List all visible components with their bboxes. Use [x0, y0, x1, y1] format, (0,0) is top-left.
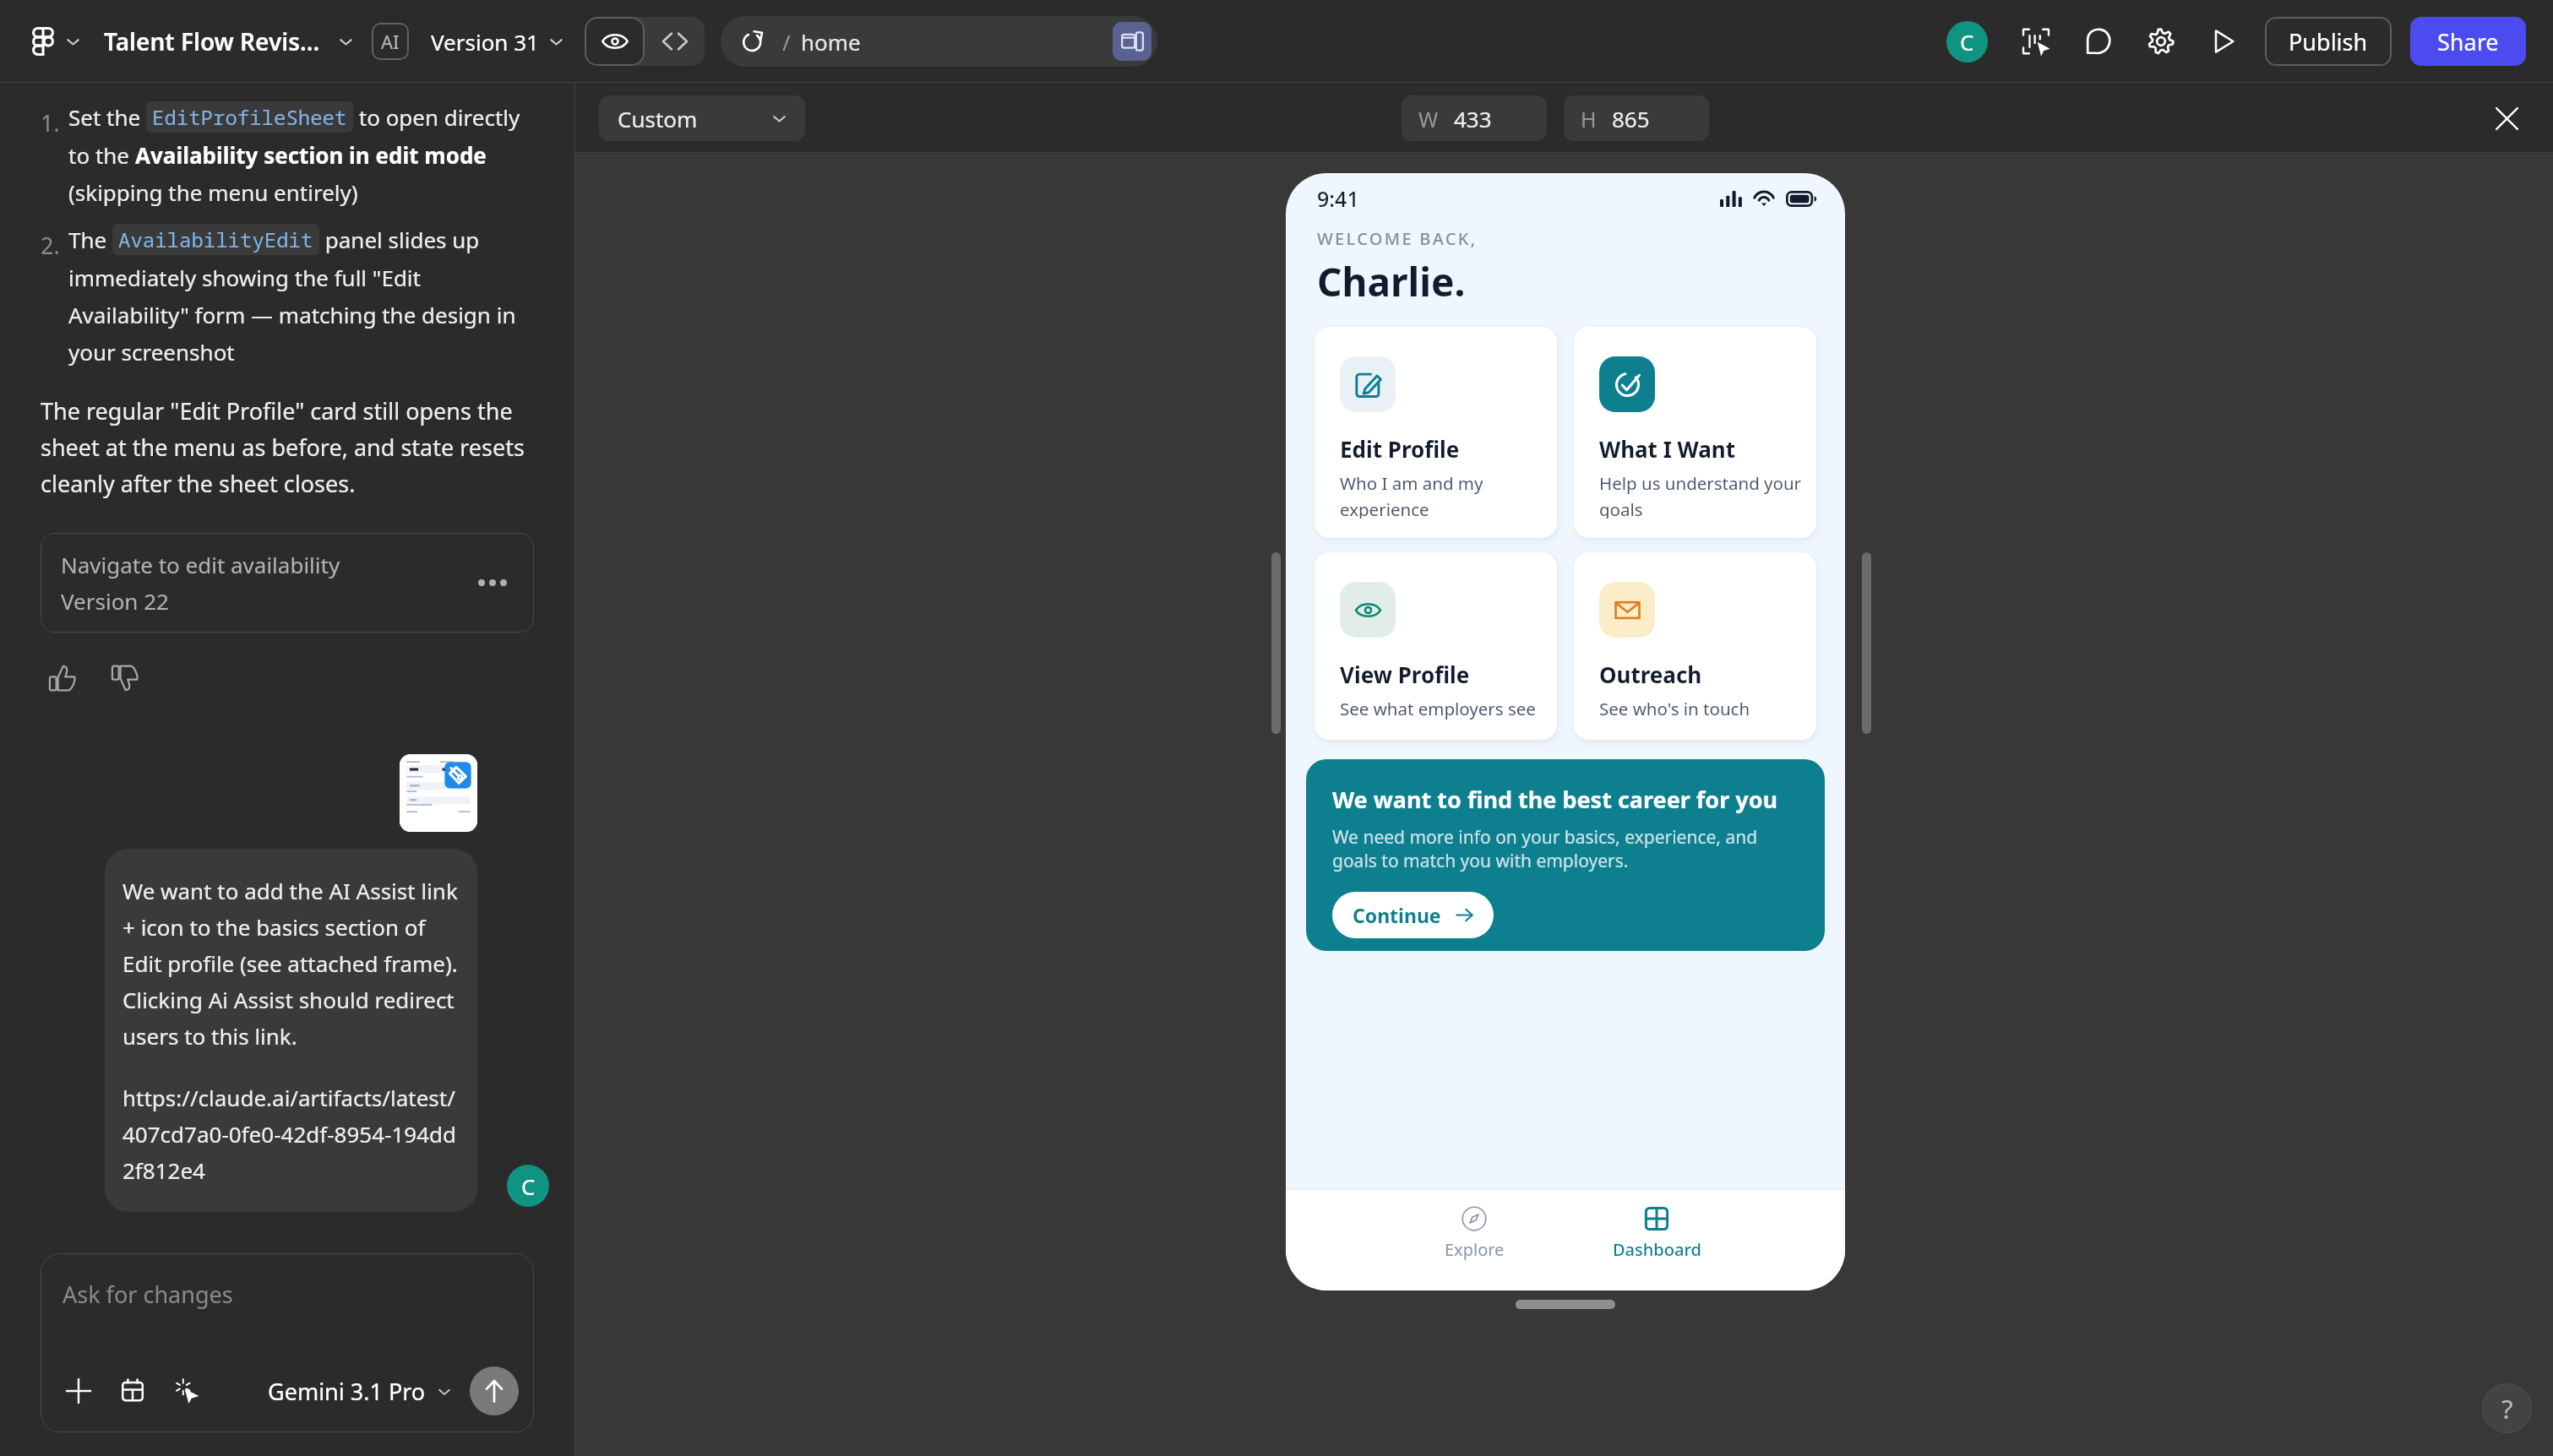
button[interactable]: Like [41, 656, 84, 700]
staticText: 2. [41, 230, 68, 261]
staticText: Who I am and my experience [1340, 471, 1545, 519]
staticText: 1. [41, 107, 68, 139]
staticText: W [1418, 105, 1439, 133]
button[interactable]: More options [471, 562, 514, 604]
button[interactable]: / [721, 16, 1157, 67]
staticText: 865 [1612, 104, 1650, 133]
staticText: AvailabilityEdit [118, 225, 313, 253]
staticText: Gemini 3.1 Pro [268, 1376, 426, 1407]
staticText: H [1581, 105, 1597, 133]
staticText: Publish [2289, 26, 2368, 57]
staticText: We want to find the best career for you [1332, 784, 1778, 815]
button[interactable]: Settings [2142, 22, 2180, 61]
staticText: https://claude.ai/artifacts/latest/407cd… [122, 1083, 460, 1185]
staticText: to the [68, 140, 135, 170]
staticText: Outreach [1599, 660, 1702, 689]
button[interactable]: Publish [2265, 17, 2392, 66]
button[interactable]: We want to find the best career for you [1306, 759, 1825, 951]
staticText: panel slides up [319, 225, 480, 254]
staticText: home [801, 27, 861, 57]
staticText: (skipping the menu entirely) [68, 177, 358, 207]
staticText: Version 31 [431, 27, 539, 57]
button[interactable]: File options [334, 30, 358, 54]
staticText: We want to add the AI Assist link + icon… [122, 876, 460, 1051]
button[interactable]: Comment [2079, 22, 2118, 61]
staticText: Edit Profile [1340, 434, 1460, 464]
staticText: The regular "Edit Profile" card still op… [41, 395, 534, 499]
button[interactable]: Continue [1332, 892, 1494, 938]
button[interactable]: We want to add the AI Assist link + icon… [105, 849, 477, 1212]
staticText: your screenshot [68, 337, 235, 367]
button[interactable]: Present [2204, 22, 2243, 61]
button[interactable]: Select element [166, 1370, 208, 1412]
staticText: WELCOME BACK, [1317, 227, 1478, 250]
staticText: The [68, 225, 112, 254]
staticText: ? [2501, 1391, 2513, 1426]
staticText: AI [381, 29, 400, 54]
staticText: We need more info on your basics, experi… [1332, 825, 1801, 872]
button[interactable]: Send [470, 1366, 519, 1415]
staticText: Continue [1353, 902, 1441, 928]
staticText: See who's in touch [1599, 697, 1750, 720]
staticText: Charlie. [1317, 255, 1466, 308]
staticText: Share [2437, 26, 2499, 57]
staticText: immediately showing the full "Edit [68, 263, 421, 292]
staticText: 433 [1454, 104, 1492, 133]
staticText: EditProfileSheet [152, 103, 347, 131]
button[interactable]: Explore [1383, 1189, 1565, 1261]
button[interactable]: Navigate to edit availability [41, 533, 534, 633]
button[interactable]: Custom [599, 95, 805, 141]
button[interactable]: Attached frame [400, 754, 477, 832]
button[interactable]: Code [645, 17, 705, 66]
staticText: View Profile [1340, 660, 1470, 689]
button[interactable]: Select layer [2017, 22, 2055, 61]
staticText: 9:41 [1317, 184, 1359, 213]
button[interactable]: W [1402, 95, 1547, 141]
button[interactable]: Dislike [103, 656, 147, 700]
button[interactable]: What I Want [1574, 327, 1816, 538]
staticText: What I Want [1599, 434, 1735, 464]
button[interactable]: Help [2482, 1383, 2532, 1433]
button[interactable]: Your avatar [507, 1165, 549, 1207]
button[interactable]: Share [2410, 17, 2526, 66]
button[interactable]: Figma menu [29, 24, 84, 59]
button[interactable]: H [1564, 95, 1709, 141]
button[interactable]: Outreach [1574, 552, 1816, 740]
staticText: Set the [68, 102, 146, 132]
staticText: See what employers see [1340, 697, 1536, 720]
staticText: Talent Flow Revis... [104, 25, 320, 57]
staticText: Availability" form — matching the design… [68, 300, 516, 329]
button[interactable]: Responsive preview [1113, 22, 1151, 61]
button[interactable]: View Profile [1315, 552, 1557, 740]
staticText: Dashboard [1613, 1238, 1701, 1261]
button[interactable]: AI [372, 23, 409, 60]
staticText: Custom [618, 104, 698, 133]
button[interactable]: Frames [112, 1370, 154, 1412]
staticText: Version 22 [61, 586, 169, 616]
button[interactable]: Close [2484, 95, 2529, 141]
staticText: Ask for changes [63, 1279, 233, 1310]
button[interactable]: Add attachment [57, 1370, 100, 1412]
button[interactable]: Account [1946, 21, 1988, 62]
button[interactable]: Version 31 [427, 24, 567, 60]
staticText: Help us understand your goals [1599, 471, 1805, 519]
button[interactable]: Preview [585, 17, 645, 66]
staticText: C [521, 1171, 536, 1201]
button[interactable]: Edit Profile [1315, 327, 1557, 538]
staticText: Navigate to edit availability [61, 550, 340, 579]
staticText: to open directly [353, 102, 520, 132]
staticText: Availability section in edit mode [135, 140, 487, 170]
button[interactable]: Dashboard [1565, 1189, 1748, 1261]
staticText: / [782, 27, 791, 57]
button[interactable]: Ask for changes [41, 1253, 534, 1432]
staticText: C [1960, 27, 1974, 57]
staticText: Explore [1445, 1238, 1505, 1261]
button[interactable]: Gemini 3.1 Pro [264, 1372, 455, 1410]
